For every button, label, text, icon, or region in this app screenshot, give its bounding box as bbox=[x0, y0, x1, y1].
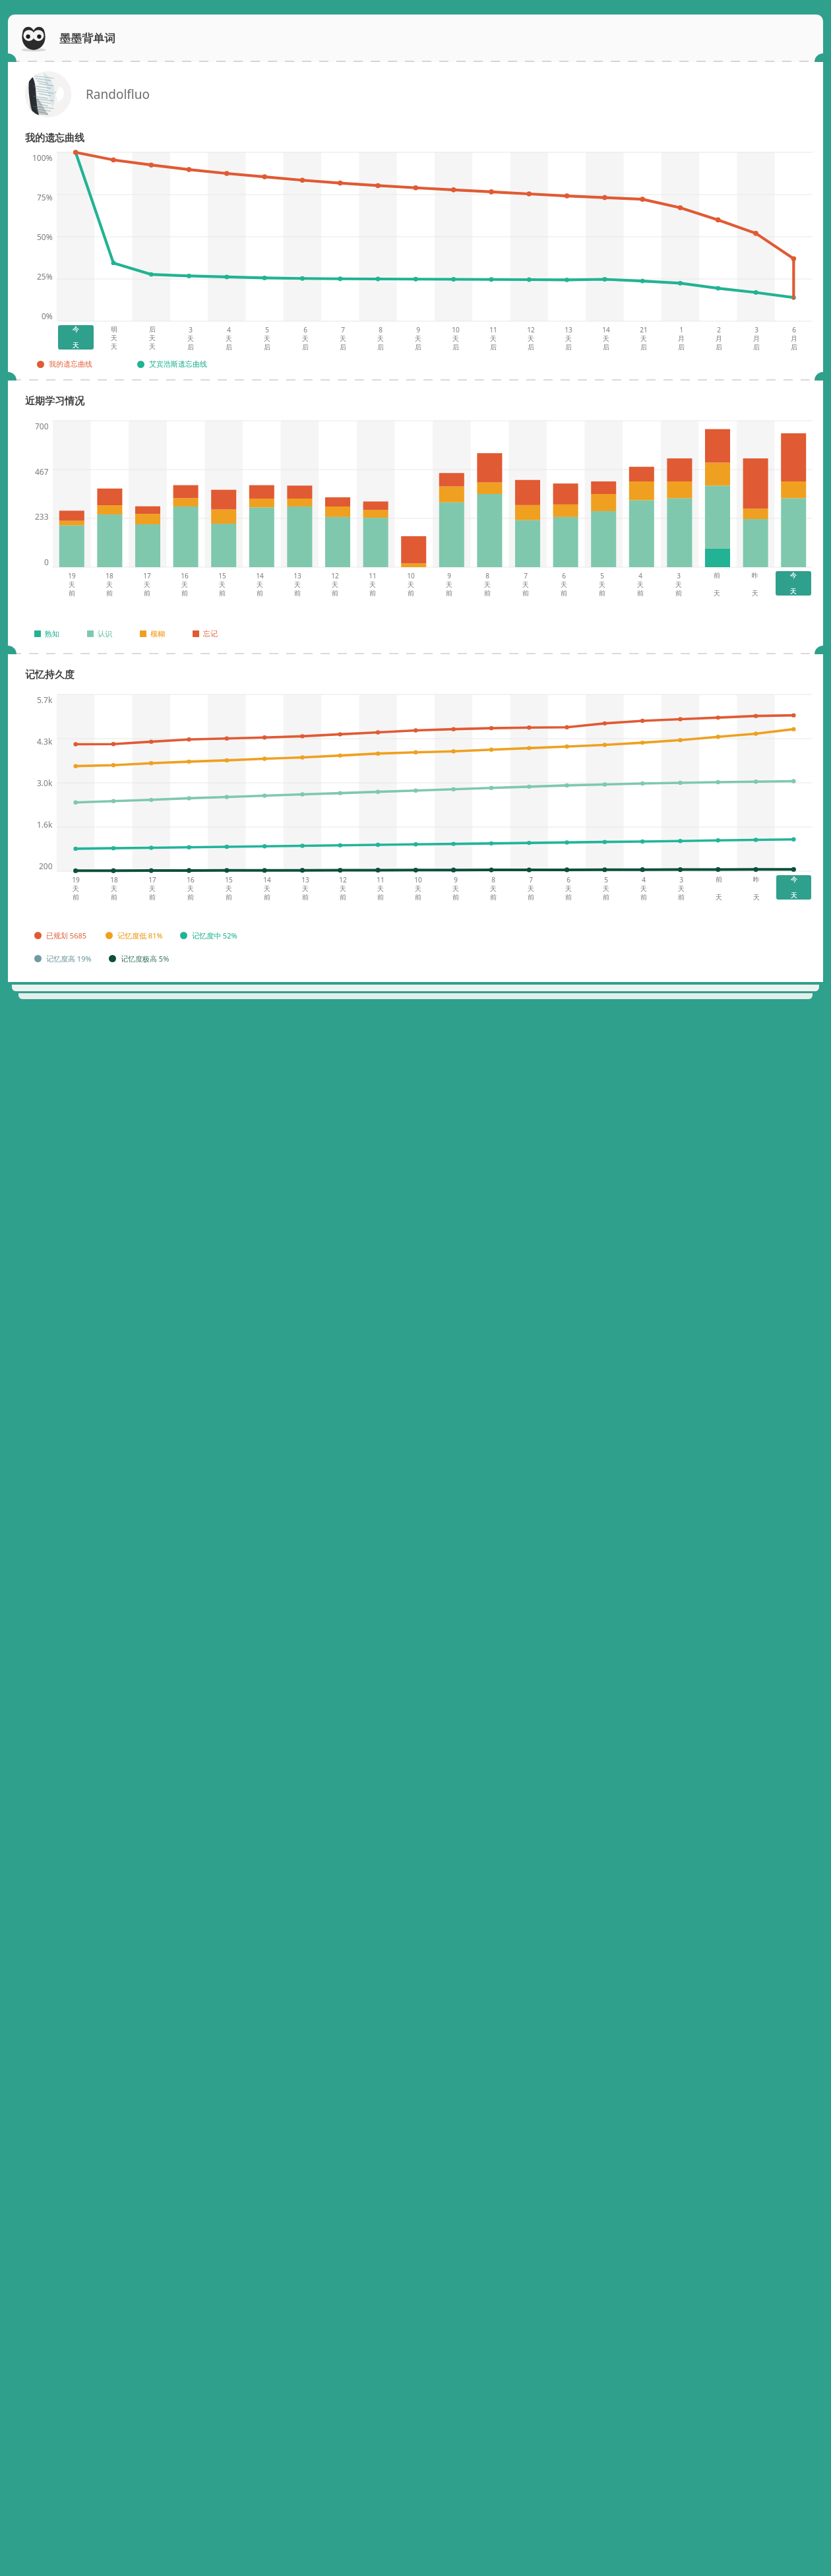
staticText: 10 bbox=[452, 325, 460, 334]
staticText: 75% bbox=[37, 192, 53, 202]
staticText: 前 bbox=[446, 589, 452, 598]
staticText: 前 bbox=[484, 589, 491, 598]
staticText: 天 bbox=[484, 580, 491, 589]
button[interactable]: 记忆度高 19% bbox=[34, 954, 92, 964]
button[interactable]: 记忆度中 52% bbox=[180, 931, 237, 940]
staticText: 前 bbox=[408, 589, 414, 598]
staticText: 天 bbox=[490, 884, 497, 893]
staticText: 记忆度低 81% bbox=[117, 931, 163, 940]
staticText: 前 bbox=[226, 893, 232, 902]
staticText: 天 bbox=[302, 334, 309, 343]
button[interactable]: 认识 bbox=[87, 629, 112, 638]
staticText: 天 bbox=[149, 334, 156, 342]
staticText: 50% bbox=[37, 231, 53, 242]
other: App logo bbox=[20, 24, 47, 52]
staticText: 近期学习情况 bbox=[25, 395, 84, 408]
staticText: 天 bbox=[791, 891, 797, 900]
staticText: 700 bbox=[35, 421, 49, 431]
staticText: 11 bbox=[377, 875, 385, 884]
staticText: 天 bbox=[144, 580, 150, 589]
button[interactable]: Profile avatar bbox=[25, 71, 813, 117]
staticText: 记忆持久度 bbox=[25, 669, 75, 681]
staticText: 天 bbox=[340, 884, 346, 893]
staticText: 天 bbox=[226, 334, 232, 343]
staticText: 模糊 bbox=[150, 629, 165, 638]
staticText: 后 bbox=[340, 343, 346, 350]
button[interactable]: 记忆度低 81% bbox=[106, 931, 163, 940]
staticText: 14 bbox=[263, 875, 271, 884]
staticText: 记忆度中 52% bbox=[192, 931, 237, 940]
staticText: 天 bbox=[111, 884, 117, 893]
staticText: 后 bbox=[716, 343, 722, 350]
staticText: 天 bbox=[561, 580, 567, 589]
staticText: 4 bbox=[638, 571, 642, 580]
staticText: 我的遗忘曲线 bbox=[49, 359, 92, 369]
staticText: 4 bbox=[227, 325, 231, 334]
staticText: 前 bbox=[302, 893, 309, 902]
staticText: 后 bbox=[302, 343, 309, 350]
staticText: 天 bbox=[106, 580, 113, 589]
staticText: 天 bbox=[69, 580, 75, 589]
staticText: 天 bbox=[408, 580, 414, 589]
staticText: 14 bbox=[256, 571, 264, 580]
staticText: 前 bbox=[294, 589, 301, 598]
staticText: 天 bbox=[181, 580, 188, 589]
staticText: 2 bbox=[717, 325, 721, 334]
staticText: 天 bbox=[340, 334, 346, 343]
button[interactable]: App logo bbox=[8, 15, 823, 62]
staticText: 天 bbox=[752, 589, 758, 598]
staticText: 5 bbox=[604, 875, 608, 884]
staticText: 月 bbox=[753, 334, 760, 343]
staticText: 4.3k bbox=[37, 736, 53, 747]
button[interactable]: 熟知 bbox=[34, 629, 59, 638]
staticText: 后 bbox=[753, 343, 760, 350]
button[interactable]: 记忆度极高 5% bbox=[109, 954, 169, 964]
staticText: Randolfluo bbox=[86, 86, 150, 103]
staticText: 6 bbox=[303, 325, 307, 334]
staticText: 18 bbox=[110, 875, 118, 884]
staticText: 天 bbox=[187, 884, 194, 893]
staticText: 0 bbox=[44, 557, 49, 567]
staticText: 月 bbox=[678, 334, 685, 343]
other: Profile avatar bbox=[25, 71, 71, 117]
staticText: 天 bbox=[452, 334, 459, 343]
staticText: 天 bbox=[716, 893, 722, 902]
staticText: 天 bbox=[415, 334, 421, 343]
staticText: 11 bbox=[489, 325, 497, 334]
staticText: 9 bbox=[447, 571, 451, 580]
staticText: 今 bbox=[73, 325, 79, 334]
staticText: 前 bbox=[528, 893, 534, 902]
staticText: 记忆度高 19% bbox=[46, 954, 92, 964]
button[interactable]: 艾宾浩斯遗忘曲线 bbox=[137, 359, 207, 369]
button[interactable]: 我的遗忘曲线 bbox=[37, 359, 92, 369]
staticText: 后 bbox=[415, 343, 421, 350]
staticText: 月 bbox=[716, 334, 722, 343]
staticText: 今 bbox=[791, 875, 797, 884]
staticText: 前 bbox=[599, 589, 605, 598]
staticText: 天 bbox=[377, 884, 384, 893]
staticText: 认识 bbox=[98, 629, 112, 638]
staticText: 19 bbox=[68, 571, 76, 580]
staticText: 前 bbox=[377, 893, 384, 902]
staticText: 天 bbox=[753, 893, 760, 902]
staticText: 5.7k bbox=[37, 694, 53, 705]
staticText: 后 bbox=[528, 343, 534, 350]
staticText: 7 bbox=[341, 325, 345, 334]
staticText: 记忆度极高 5% bbox=[121, 954, 169, 964]
staticText: 3 bbox=[754, 325, 758, 334]
staticText: 前 bbox=[415, 893, 421, 902]
staticText: 前 bbox=[332, 589, 338, 598]
staticText: 已规划 5685 bbox=[46, 931, 87, 940]
button[interactable]: 已规划 5685 bbox=[34, 931, 87, 940]
button[interactable]: 模糊 bbox=[140, 629, 165, 638]
staticText: 前 bbox=[144, 589, 150, 598]
staticText: 前 bbox=[490, 893, 497, 902]
staticText: 0% bbox=[42, 311, 53, 321]
staticText: 1 bbox=[679, 325, 683, 334]
staticText: 25% bbox=[37, 271, 53, 282]
staticText: 天 bbox=[111, 334, 117, 342]
staticText: 天 bbox=[640, 884, 647, 893]
staticText: 天 bbox=[264, 884, 270, 893]
staticText: 天 bbox=[257, 580, 263, 589]
button[interactable]: 忘记 bbox=[193, 629, 218, 638]
